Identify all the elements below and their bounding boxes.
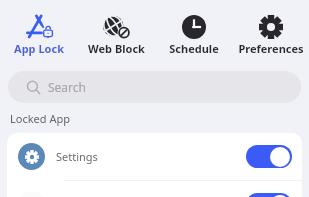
staticText: Search [48, 79, 86, 95]
other: Web Block [103, 15, 130, 39]
button[interactable]: Toggle Calendar [246, 193, 292, 197]
staticText: Settings [56, 149, 98, 164]
staticText: Schedule [169, 41, 219, 56]
other: Preferences [259, 15, 283, 39]
staticText: App Lock [14, 41, 64, 56]
staticText: Preferences [238, 41, 304, 56]
button[interactable]: Toggle Settings [246, 145, 292, 168]
button[interactable]: App Lock [0, 0, 78, 56]
button[interactable]: Calendar [7, 181, 302, 197]
button[interactable]: Search [8, 71, 301, 103]
staticText: Locked App [10, 111, 70, 126]
button[interactable]: Web Block [78, 0, 155, 56]
button[interactable]: Settings [7, 133, 302, 180]
button[interactable]: Schedule [155, 0, 232, 56]
staticText: Web Block [88, 41, 145, 56]
button[interactable]: Preferences [232, 0, 309, 56]
other: App Lock [26, 15, 53, 39]
other: Schedule [182, 15, 206, 39]
